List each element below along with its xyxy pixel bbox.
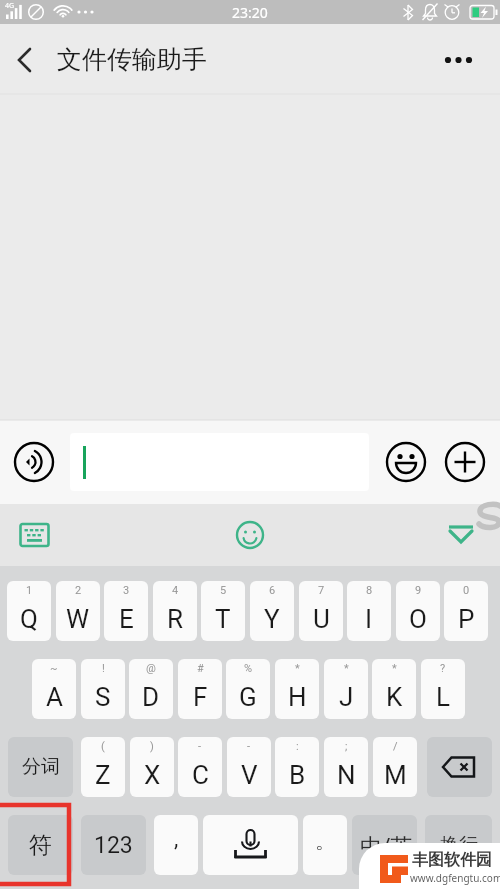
staticText: www.dgfengtu.com: [410, 871, 500, 885]
staticText: *: [344, 662, 349, 675]
button[interactable]: ?: [421, 659, 465, 719]
staticText: 3: [123, 584, 130, 597]
button[interactable]: Keyboard: [12, 513, 56, 557]
staticText: V: [241, 760, 258, 790]
button[interactable]: 0: [444, 581, 488, 641]
button[interactable]: 3: [104, 581, 148, 641]
staticText: G: [239, 682, 257, 712]
staticText: I: [365, 604, 373, 634]
button[interactable]: 6: [250, 581, 294, 641]
button[interactable]: 123: [81, 815, 146, 875]
button[interactable]: ~: [32, 659, 76, 719]
staticText: /: [393, 740, 398, 753]
button[interactable]: cn_en: [352, 815, 417, 875]
staticText: M: [384, 760, 407, 790]
staticText: Y: [264, 604, 280, 634]
staticText: ;: [345, 740, 348, 753]
staticText: J: [339, 682, 354, 712]
button[interactable]: (: [81, 737, 125, 797]
button[interactable]: /: [373, 737, 417, 797]
button[interactable]: 8: [347, 581, 391, 641]
button[interactable]: 2: [56, 581, 100, 641]
staticText: 7: [318, 584, 325, 597]
staticText: 。: [315, 829, 335, 854]
button[interactable]: 分词: [8, 737, 73, 797]
staticText: X: [144, 760, 161, 790]
button[interactable]: -: [178, 737, 222, 797]
staticText: E: [119, 604, 134, 634]
button[interactable]: :: [275, 737, 319, 797]
staticText: 中/英: [360, 830, 413, 860]
button[interactable]: *: [324, 659, 368, 719]
button[interactable]: ,: [154, 815, 198, 875]
button[interactable]: space: [203, 815, 298, 875]
staticText: F: [193, 682, 208, 712]
staticText: 9: [415, 584, 422, 597]
staticText: ~: [50, 662, 58, 675]
button[interactable]: 4: [153, 581, 197, 641]
staticText: H: [288, 682, 307, 712]
staticText: P: [458, 604, 475, 634]
staticText: 文件传输助手: [57, 44, 207, 75]
button[interactable]: ;: [324, 737, 368, 797]
button[interactable]: [70, 433, 369, 491]
button[interactable]: 1: [7, 581, 51, 641]
button[interactable]: !: [81, 659, 125, 719]
staticText: D: [142, 682, 160, 712]
button[interactable]: backspace: [427, 737, 492, 797]
staticText: -: [247, 740, 251, 753]
staticText: 分词: [22, 755, 60, 779]
staticText: Z: [95, 760, 111, 790]
button[interactable]: Emoji: [230, 515, 270, 555]
button[interactable]: #: [178, 659, 222, 719]
staticText: 符: [29, 831, 52, 860]
staticText: 4G: [5, 1, 15, 11]
staticText: B: [289, 760, 306, 790]
staticText: *: [295, 662, 300, 675]
button[interactable]: %: [226, 659, 270, 719]
button[interactable]: 9: [396, 581, 440, 641]
staticText: :: [296, 740, 299, 753]
button[interactable]: Emoji: [386, 442, 426, 482]
staticText: L: [436, 682, 451, 712]
button[interactable]: @: [129, 659, 173, 719]
button[interactable]: Hide keyboard: [441, 515, 481, 555]
staticText: O: [409, 604, 427, 634]
staticText: (: [101, 740, 105, 753]
staticText: 123: [94, 832, 133, 859]
button[interactable]: -: [227, 737, 271, 797]
staticText: %: [244, 662, 253, 675]
staticText: *: [392, 662, 397, 675]
staticText: 换行: [440, 833, 478, 857]
staticText: ): [150, 740, 154, 753]
button[interactable]: *: [372, 659, 416, 719]
staticText: Q: [20, 604, 38, 634]
button[interactable]: 5: [201, 581, 245, 641]
button[interactable]: Voice input: [14, 442, 54, 482]
staticText: K: [386, 682, 403, 712]
staticText: S: [95, 682, 111, 712]
staticText: @: [146, 662, 156, 675]
staticText: 4: [172, 584, 179, 597]
button[interactable]: More functions: [445, 442, 485, 482]
staticText: ?: [440, 662, 446, 675]
button[interactable]: *: [275, 659, 319, 719]
staticText: ,: [174, 826, 179, 852]
button[interactable]: 符: [8, 815, 73, 875]
button[interactable]: ): [130, 737, 174, 797]
staticText: 5: [220, 584, 227, 597]
staticText: U: [313, 604, 330, 634]
staticText: 丰图软件园: [412, 850, 492, 870]
button[interactable]: Back: [0, 36, 48, 84]
staticText: 6: [269, 584, 276, 597]
button[interactable]: More options: [436, 28, 500, 92]
staticText: N: [337, 760, 356, 790]
button[interactable]: enter: [425, 815, 492, 875]
staticText: R: [167, 604, 184, 634]
staticText: C: [192, 760, 209, 790]
button[interactable]: 。: [303, 815, 347, 875]
staticText: 23:20: [232, 3, 268, 22]
button[interactable]: 7: [299, 581, 343, 641]
staticText: T: [215, 604, 231, 634]
staticText: 8: [366, 584, 373, 597]
